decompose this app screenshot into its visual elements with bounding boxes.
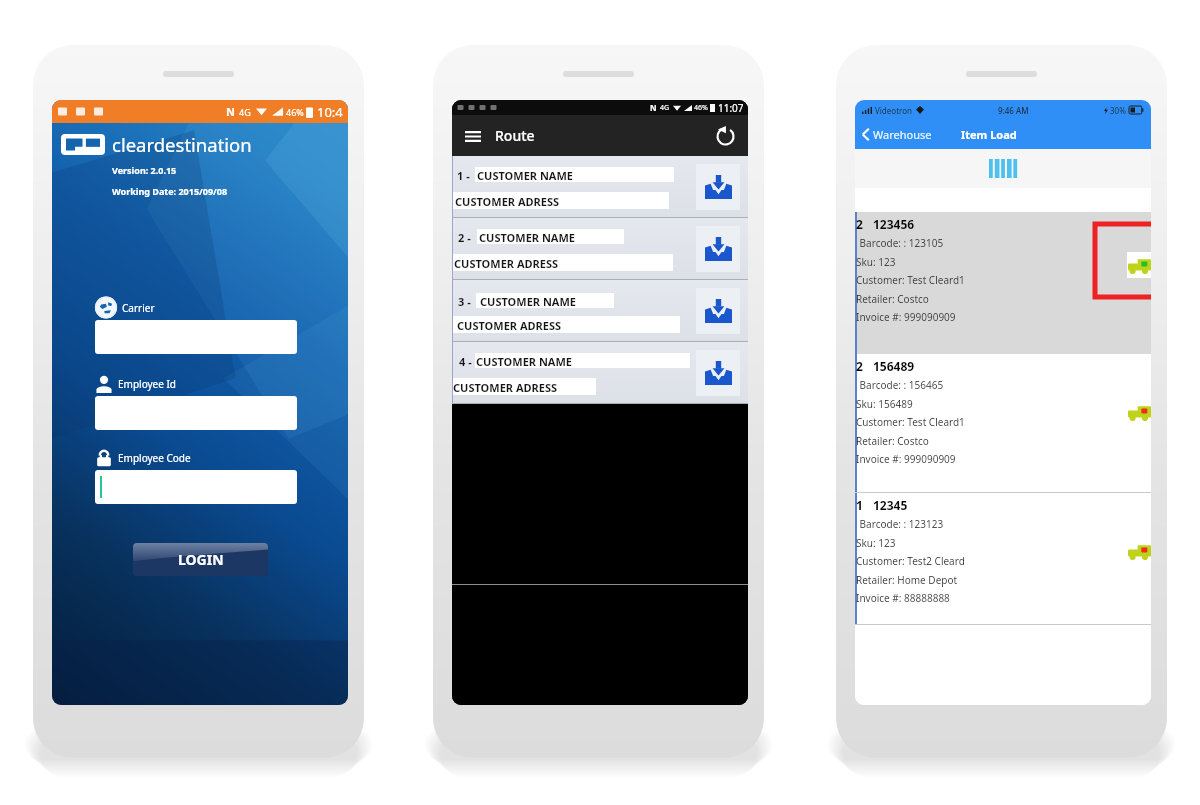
staticText: Sku: 123 (856, 255, 896, 269)
button[interactable]: Delivery status (1128, 403, 1151, 421)
staticText: 4G (660, 103, 670, 113)
staticText: 123456 (873, 216, 915, 232)
staticText: Barcode: : 156465 (857, 378, 944, 392)
staticText: 46% (286, 106, 304, 118)
staticText: 4G (239, 106, 251, 118)
staticText: Invoice #: 999090909 (856, 452, 956, 466)
staticText: CUSTOMER NAME (477, 168, 573, 183)
staticText: CUSTOMER ADRESS (457, 318, 562, 333)
staticText: Customer: Test2 Cleard (856, 554, 965, 568)
staticText: 1 - (457, 168, 470, 183)
button[interactable]: 3 - (452, 280, 748, 342)
button[interactable] (95, 396, 297, 430)
staticText: 30% (1110, 105, 1126, 116)
button[interactable]: Delivery status (1128, 542, 1151, 560)
staticText: CUSTOMER NAME (476, 354, 572, 369)
staticText: 156489 (873, 358, 915, 374)
staticText: 2 - (458, 230, 471, 245)
staticText: Retailer: Home Depot (856, 573, 958, 587)
button[interactable]: Delivery status (1128, 256, 1151, 274)
staticText: Sku: 123 (856, 536, 896, 550)
button[interactable]: LOGIN (133, 543, 268, 576)
button[interactable]: 2 - (452, 218, 748, 280)
button[interactable]: 2 (855, 212, 1151, 354)
staticText: Sku: 156489 (856, 397, 913, 411)
staticText: CUSTOMER ADRESS (453, 380, 558, 395)
staticText: CUSTOMER NAME (479, 230, 575, 245)
staticText: Version: 2.0.15 (112, 164, 177, 176)
staticText: CUSTOMER NAME (480, 294, 576, 309)
button[interactable] (95, 320, 297, 354)
staticText: CUSTOMER ADRESS (455, 194, 560, 209)
staticText: Employee Id (118, 377, 177, 391)
staticText: Invoice #: 88888888 (856, 591, 950, 605)
staticText: N (226, 104, 235, 119)
staticText: cleardestination (112, 132, 252, 157)
staticText: 12345 (873, 497, 908, 513)
staticText: 10:4 (317, 103, 343, 121)
button[interactable]: Download (696, 226, 740, 272)
staticText: Warehouse (873, 127, 932, 142)
staticText: CUSTOMER ADRESS (454, 256, 559, 271)
button[interactable]: Download (696, 164, 740, 210)
button[interactable]: Scan barcode (855, 149, 1151, 188)
button[interactable]: Warehouse (860, 127, 932, 142)
button[interactable]: 1 (855, 493, 1151, 625)
button[interactable] (95, 470, 297, 504)
staticText: Employee Code (118, 451, 191, 465)
staticText: 3 - (458, 294, 471, 309)
staticText: 2 (856, 216, 863, 232)
button[interactable]: Refresh (712, 123, 738, 149)
staticText: 1 (856, 497, 863, 513)
staticText: Invoice #: 999090909 (856, 310, 956, 324)
staticText: Barcode: : 123105 (857, 236, 944, 250)
button[interactable]: Menu (461, 124, 485, 148)
staticText: Videotron (875, 105, 912, 116)
staticText: Retailer: Costco (856, 434, 929, 448)
staticText: 4 - (459, 354, 472, 369)
staticText: Carrier (122, 301, 155, 315)
staticText: Customer: Test Cleard1 (856, 273, 965, 287)
button[interactable]: Download (696, 350, 740, 396)
staticText: Retailer: Costco (856, 292, 929, 306)
button[interactable]: 1 - (452, 156, 748, 218)
button[interactable]: Download (696, 288, 740, 334)
staticText: Route (495, 126, 535, 145)
staticText: 9:46 AM (998, 105, 1029, 116)
staticText: Customer: Test Cleard1 (856, 415, 965, 429)
staticText: LOGIN (178, 550, 224, 569)
staticText: Barcode: : 123123 (857, 517, 944, 531)
button[interactable]: 4 - (452, 342, 748, 404)
staticText: 2 (856, 358, 863, 374)
staticText: 11:07 (718, 101, 744, 115)
staticText: 46% (694, 103, 708, 113)
button[interactable]: 2 (855, 354, 1151, 493)
staticText: Item Load (961, 127, 1017, 142)
staticText: N (650, 102, 657, 113)
staticText: Working Date: 2015/09/08 (112, 185, 228, 197)
